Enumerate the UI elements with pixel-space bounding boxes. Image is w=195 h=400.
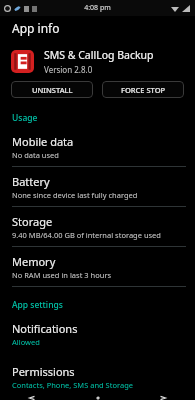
button[interactable]: Memory [0,247,195,287]
staticText: FORCE STOP [121,85,166,95]
staticText: No data used [12,150,59,160]
staticText: Allowed [12,337,40,347]
button[interactable]: FORCE STOP [102,81,184,98]
button[interactable]: Storage [0,207,195,247]
button[interactable]: Home [65,396,130,400]
staticText: Mobile data [12,134,74,149]
staticText: App settings [12,299,63,311]
staticText: SMS & CallLog Backup [44,48,154,62]
button[interactable]: Back [0,396,65,400]
staticText: 9.40 MB/64.00 GB of internal storage use… [12,230,161,240]
staticText: Notifications [12,321,78,336]
button[interactable]: Notifications [0,314,195,353]
staticText: UNINSTALL [32,85,73,95]
staticText: Contacts, Phone, SMS and Storage [12,380,133,390]
button[interactable]: UNINSTALL [11,81,93,98]
staticText: Version 2.8.0 [44,64,93,75]
button[interactable]: Mobile data [0,127,195,167]
staticText: Storage [12,214,53,229]
staticText: None since device last fully charged [12,190,138,200]
staticText: App info [12,20,60,36]
staticText: Memory [12,254,56,269]
staticText: No RAM used in last 3 hours [12,270,112,280]
button[interactable]: Recent apps [130,396,195,400]
button[interactable]: Permissions [0,357,195,396]
staticText: Usage [12,112,38,124]
button[interactable]: Battery [0,167,195,207]
staticText: Permissions [12,364,75,379]
staticText: Battery [12,174,50,189]
staticText: 4:08 pm [84,3,111,13]
